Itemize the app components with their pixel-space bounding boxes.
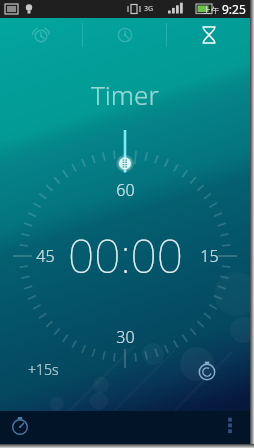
button[interactable]: More options [218,413,242,437]
staticText: 30 [116,326,135,348]
staticText: 9:25 [222,1,246,17]
button[interactable]: +15s [28,360,59,379]
button[interactable]: Start timer [194,358,220,384]
staticText: 60 [116,179,135,201]
button[interactable]: Timer [167,18,250,52]
staticText: Timer [91,77,159,112]
staticText: 15 [200,245,219,267]
button[interactable]: Stopwatch [7,413,33,439]
button[interactable]: Clock [83,18,166,52]
staticText: 上午 [203,4,222,15]
staticText: 45 [36,245,55,267]
button[interactable]: Alarm [0,18,82,52]
staticText: 3G [144,4,154,14]
staticText: +15s [28,360,59,379]
staticText: 00:00 [68,224,183,287]
